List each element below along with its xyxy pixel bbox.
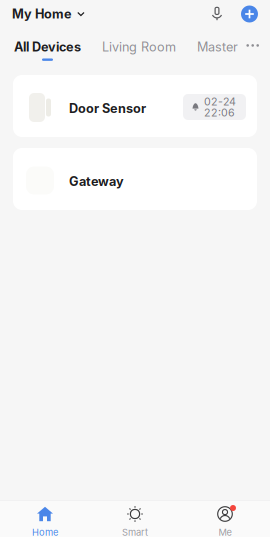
button[interactable]: Master	[176, 39, 238, 54]
button[interactable]: Living Room	[81, 39, 176, 54]
button[interactable]: Me	[180, 500, 270, 537]
button[interactable]: My Home	[0, 0, 85, 29]
staticText: 22:06	[204, 106, 235, 119]
button[interactable]: Door Sensor	[13, 75, 257, 137]
staticText: All Devices	[14, 39, 81, 54]
staticText: 02-24	[204, 95, 236, 108]
staticText: Home	[32, 527, 58, 537]
staticText: Door Sensor	[69, 101, 146, 116]
button[interactable]: Gateway	[13, 148, 257, 210]
button[interactable]: Home	[0, 500, 90, 537]
staticText: Smart	[122, 527, 148, 537]
button[interactable]: All Devices	[0, 39, 81, 61]
button[interactable]: More rooms	[246, 39, 270, 51]
staticText: Me	[218, 527, 231, 537]
button[interactable]: Smart	[90, 500, 180, 537]
staticText: Master	[197, 39, 238, 54]
button[interactable]: Add device	[230, 0, 270, 27]
staticText: My Home	[12, 6, 72, 22]
staticText: Gateway	[69, 174, 124, 189]
button[interactable]: Voice control	[204, 2, 230, 26]
staticText: Living Room	[102, 39, 176, 54]
